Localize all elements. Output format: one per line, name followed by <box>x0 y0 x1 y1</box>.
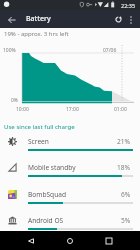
button[interactable]: More options <box>123 12 138 27</box>
button[interactable]: Refresh <box>110 11 126 27</box>
staticText: Use since last full charge <box>4 122 75 130</box>
button[interactable]: Android OS <box>0 209 140 235</box>
staticText: BombSquad <box>28 190 66 199</box>
staticText: 07/06 <box>103 47 117 54</box>
staticText: 100% <box>3 47 16 54</box>
staticText: 21% <box>117 137 131 146</box>
button[interactable]: BombSquad <box>0 183 140 209</box>
button[interactable]: Mobile standby <box>0 156 140 182</box>
staticText: 0% <box>11 97 19 104</box>
staticText: 5% <box>121 216 131 225</box>
button[interactable]: Recents <box>101 233 117 249</box>
button[interactable]: Back <box>3 11 20 28</box>
button[interactable]: Home <box>62 233 78 249</box>
staticText: Battery <box>26 14 51 24</box>
staticText: 17:00 <box>66 106 79 113</box>
staticText: Android OS <box>28 216 64 225</box>
staticText: Mobile standby <box>28 163 76 172</box>
staticText: Screen <box>28 137 49 146</box>
staticText: 10:00 <box>16 106 29 113</box>
button[interactable]: Screen <box>0 130 140 156</box>
staticText: 19% - approx. 3 hrs left <box>4 30 69 38</box>
staticText: 22:35 <box>121 2 136 9</box>
button[interactable]: Back <box>23 233 39 249</box>
staticText: 6% <box>121 190 131 199</box>
staticText: 18% <box>117 163 131 172</box>
staticText: 01:00 <box>114 106 127 113</box>
